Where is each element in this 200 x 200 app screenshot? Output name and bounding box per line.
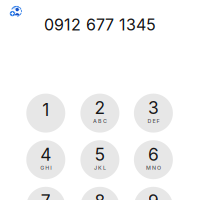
staticText: A B C [93, 118, 107, 124]
staticText: M N O [146, 164, 161, 171]
staticText: 6 [148, 144, 159, 165]
staticText: 2 [94, 97, 105, 118]
button[interactable]: 2 [80, 94, 119, 133]
staticText: 0912 677 1345 [44, 15, 156, 34]
button[interactable]: 1 [26, 94, 65, 133]
button[interactable]: 4 [26, 140, 65, 179]
staticText: 5 [94, 144, 105, 165]
button[interactable]: 7 [26, 187, 65, 200]
staticText: 4 [40, 144, 51, 165]
staticText: J K L [94, 164, 106, 171]
staticText: D E F [147, 118, 159, 124]
staticText: 1 [42, 99, 49, 120]
staticText: G H I [40, 164, 51, 171]
staticText: 3 [148, 97, 159, 118]
button[interactable]: 8 [80, 187, 119, 200]
staticText: 8 [94, 190, 105, 200]
button[interactable]: 9 [134, 187, 173, 200]
button[interactable]: Add number to contacts [1, 0, 31, 25]
button[interactable]: 3 [134, 94, 173, 133]
button[interactable]: 6 [134, 140, 173, 179]
staticText: 9 [148, 190, 159, 200]
button[interactable]: 5 [80, 140, 119, 179]
staticText: 7 [41, 190, 51, 200]
